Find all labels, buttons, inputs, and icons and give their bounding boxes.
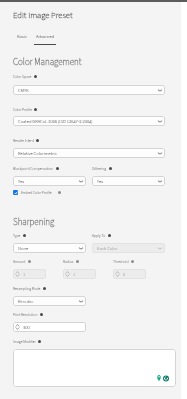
staticText: Image Modifier [13, 339, 36, 344]
staticText: Color Profile [13, 107, 32, 112]
staticText: Coated GRACoL 2006 (ISO 12647-2:2004) [18, 118, 93, 125]
staticText: Blackpoint Compensation [13, 166, 54, 171]
button[interactable]: CMYK [13, 85, 165, 95]
staticText: Amount [13, 259, 26, 264]
button[interactable]: Advanced [33, 31, 58, 42]
button[interactable]: None [13, 243, 86, 253]
staticText: Each Color [97, 245, 118, 252]
staticText: Advanced [36, 33, 55, 40]
staticText: Relative Colorimetric [18, 150, 57, 157]
staticText: Type [13, 233, 21, 238]
staticText: Color Space [13, 74, 32, 79]
button[interactable]: Basic [14, 31, 30, 42]
staticText: Dithering [92, 166, 107, 171]
staticText: Color Management [13, 56, 82, 69]
staticText: 1 [73, 271, 76, 278]
button[interactable]: 0 [113, 269, 146, 279]
staticText: 300 [23, 324, 30, 331]
staticText: None [18, 245, 29, 252]
staticText: Embed Color Profile [21, 190, 52, 195]
button[interactable]: 300 [13, 322, 86, 332]
staticText: Render Intent [13, 138, 34, 143]
staticText: Apply To [92, 233, 106, 238]
staticText: Print Resolution [13, 312, 38, 317]
staticText: Radius [63, 259, 74, 264]
other: Grammarly [163, 375, 169, 382]
staticText: Bi-cubic [18, 298, 34, 305]
staticText: CMYK [18, 87, 29, 94]
staticText: 1 [23, 271, 26, 278]
button[interactable]: Each Color [92, 243, 165, 253]
staticText: Edit Image Preset [13, 9, 73, 21]
other: Grammarly suggestion [157, 375, 161, 381]
staticText: 0 [123, 271, 126, 278]
button[interactable]: Bi-cubic [13, 296, 86, 306]
button[interactable]: 1 [13, 269, 46, 279]
staticText: Yes [97, 178, 104, 185]
button[interactable]: Yes [92, 176, 165, 186]
staticText: Sharpening [13, 216, 55, 229]
button[interactable]: Coated GRACoL 2006 (ISO 12647-2:2004) [13, 116, 165, 126]
button[interactable]: Relative Colorimetric [13, 148, 165, 158]
button[interactable] [13, 349, 176, 387]
staticText: Threshold [113, 259, 129, 264]
staticText: Resampling Mode [13, 286, 41, 291]
staticText: Yes [18, 178, 25, 185]
button[interactable]: Yes [13, 176, 86, 186]
staticText: Basic [17, 33, 27, 40]
button[interactable]: Embed Color Profile [13, 190, 61, 195]
button[interactable]: 1 [63, 269, 96, 279]
